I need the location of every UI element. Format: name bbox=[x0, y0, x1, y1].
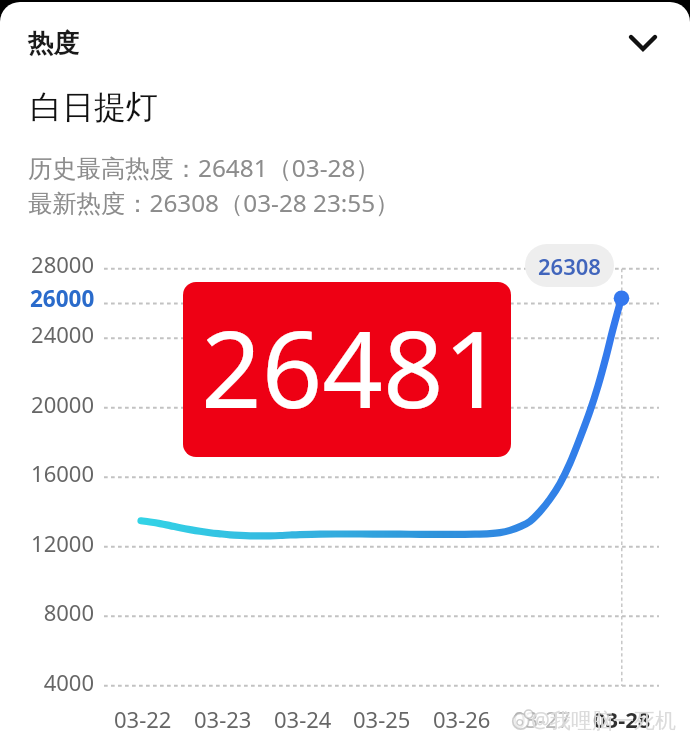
staticText: 26308 bbox=[538, 251, 601, 281]
staticText: 最新热度：26308（03-28 23:55） bbox=[28, 186, 400, 219]
staticText: 16000 bbox=[31, 458, 94, 488]
staticText: 24000 bbox=[31, 319, 94, 349]
staticText: 03-22 bbox=[114, 704, 172, 734]
staticText: 28000 bbox=[31, 249, 94, 279]
staticText: 26481 bbox=[201, 295, 505, 439]
button[interactable]: 热度 bbox=[0, 10, 690, 68]
staticText: 12000 bbox=[31, 528, 94, 558]
staticText: 03-28 bbox=[593, 704, 651, 734]
staticText: 03-23 bbox=[194, 704, 252, 734]
staticText: 白日提灯 bbox=[30, 87, 158, 127]
button[interactable]: 26308 bbox=[525, 244, 614, 287]
staticText: 热度 bbox=[28, 27, 79, 59]
staticText: 历史最高热度：26481（03-28） bbox=[28, 151, 380, 184]
staticText: @我哩脑一死机 bbox=[531, 706, 676, 735]
staticText: 26000 bbox=[30, 283, 95, 314]
button[interactable]: Collapse bbox=[613, 13, 673, 73]
staticText: @我哩脑一死机 bbox=[531, 706, 676, 735]
staticText: 4000 bbox=[43, 667, 94, 697]
staticText: 03-26 bbox=[433, 704, 491, 734]
staticText: 03-27 bbox=[513, 704, 571, 734]
staticText: 20000 bbox=[31, 389, 94, 419]
staticText: 03-25 bbox=[353, 704, 411, 734]
staticText: 03-24 bbox=[274, 704, 332, 734]
staticText: 8000 bbox=[43, 597, 94, 627]
